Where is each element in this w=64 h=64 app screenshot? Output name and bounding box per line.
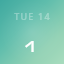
staticText: 10:09 — [18, 30, 46, 52]
staticText: TUE 14 — [14, 10, 51, 22]
button[interactable]: 10:09 — [12, 28, 52, 54]
